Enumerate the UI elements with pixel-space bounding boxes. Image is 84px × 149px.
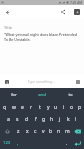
staticText: q [3, 104, 7, 111]
staticText: k [67, 116, 70, 123]
staticText: d [25, 116, 29, 123]
button[interactable]: u [52, 101, 60, 113]
staticText: "What yetsnail night does blaze.Pretende… [4, 32, 77, 42]
button[interactable]: Share [56, 5, 70, 19]
staticText: and [38, 92, 46, 98]
button[interactable]: Add attachment [2, 77, 11, 86]
staticText: e [21, 104, 24, 111]
staticText: h [50, 116, 54, 123]
staticText: . [66, 140, 68, 147]
staticText: z [17, 128, 20, 135]
staticText: 7:45 AM [70, 1, 83, 5]
button[interactable]: and [28, 88, 56, 101]
staticText: f [35, 116, 37, 123]
staticText: x [26, 128, 29, 135]
button[interactable]: t [36, 101, 44, 113]
button[interactable]: Shift [0, 125, 14, 137]
staticText: v [42, 128, 45, 135]
button[interactable]: x [23, 125, 31, 137]
staticText: g [42, 116, 46, 123]
button[interactable]: to [56, 88, 84, 101]
staticText: 123 [3, 140, 11, 146]
staticText: b [49, 128, 53, 135]
button[interactable]: Back [0, 5, 14, 19]
button[interactable]: a [4, 113, 13, 125]
staticText: t [39, 104, 41, 111]
button[interactable]: e [18, 101, 27, 113]
button[interactable]: p [76, 101, 84, 113]
staticText: Type something... [28, 80, 55, 84]
staticText: l [75, 116, 77, 123]
button[interactable]: . [62, 137, 71, 149]
button[interactable]: i [60, 101, 68, 113]
button[interactable]: h [48, 113, 56, 125]
button[interactable]: b [47, 125, 55, 137]
button[interactable]: r [27, 101, 36, 113]
button[interactable]: w [9, 101, 18, 113]
button[interactable]: v [39, 125, 47, 137]
button[interactable]: q [0, 101, 9, 113]
button[interactable]: c [31, 125, 39, 137]
button[interactable]: Enter [71, 137, 84, 149]
staticText: u [54, 104, 58, 111]
staticText: to [68, 92, 73, 98]
staticText: y [47, 104, 50, 111]
button[interactable]: z [14, 125, 23, 137]
button[interactable]: n [55, 125, 63, 137]
button[interactable]: for [0, 88, 28, 101]
staticText: c [34, 128, 37, 135]
staticText: r [30, 104, 33, 111]
staticText: w [12, 104, 16, 111]
button[interactable]: Save [70, 5, 84, 19]
button[interactable]: g [40, 113, 48, 125]
button[interactable]: y [44, 101, 52, 113]
button[interactable]: Backspace [71, 125, 84, 137]
staticText: s [16, 116, 19, 123]
button[interactable]: j [56, 113, 64, 125]
button[interactable]: k [64, 113, 72, 125]
staticText: for [11, 92, 17, 98]
staticText: o [70, 104, 74, 111]
staticText: a [7, 116, 10, 123]
staticText: m [65, 128, 70, 135]
staticText: j [59, 116, 61, 123]
button[interactable]: 123 [0, 137, 13, 149]
button[interactable]: s [13, 113, 22, 125]
staticText: n [57, 128, 61, 135]
button[interactable]: f [31, 113, 40, 125]
staticText: p [78, 104, 82, 111]
button[interactable]: o [68, 101, 76, 113]
button[interactable]: , [13, 137, 22, 149]
staticText: Title [4, 25, 12, 30]
button[interactable]: Keyboard [73, 77, 82, 86]
staticText: i [63, 104, 65, 111]
button[interactable]: m [63, 125, 71, 137]
staticText: , [17, 140, 19, 147]
button[interactable]: d [22, 113, 31, 125]
button[interactable]: l [72, 113, 80, 125]
